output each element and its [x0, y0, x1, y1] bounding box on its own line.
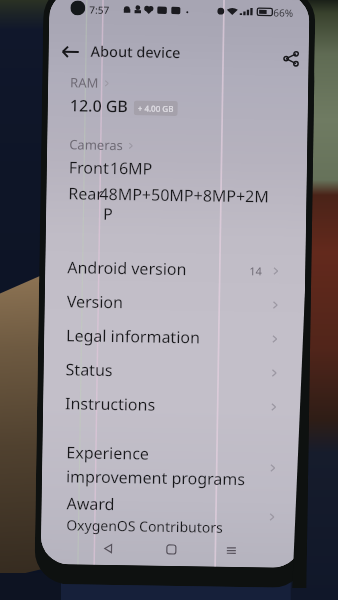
- button[interactable]: Share: [281, 49, 301, 68]
- staticText: + 4.00 GB: [138, 102, 174, 114]
- staticText: Status: [65, 358, 113, 381]
- staticText: Rear: [68, 182, 104, 205]
- button[interactable]: Experience: [42, 438, 303, 494]
- button[interactable]: Home: [164, 542, 178, 556]
- button[interactable]: Version: [44, 284, 305, 322]
- button[interactable]: Status: [43, 352, 304, 390]
- staticText: OxygenOS Contributors: [66, 515, 223, 537]
- staticText: Instructions: [65, 392, 156, 416]
- button[interactable]: Android version: [45, 250, 305, 288]
- staticText: RAM: [70, 73, 99, 92]
- staticText: About device: [90, 41, 181, 62]
- button[interactable]: Instructions: [43, 386, 303, 424]
- staticText: 7:57: [89, 3, 109, 17]
- button[interactable]: Back: [60, 41, 82, 62]
- staticText: Cameras: [69, 135, 123, 154]
- staticText: 14: [249, 263, 262, 278]
- button[interactable]: Back: [101, 541, 115, 555]
- staticText: Front: [69, 156, 109, 179]
- staticText: P: [103, 203, 113, 225]
- staticText: Legal information: [66, 324, 200, 348]
- button[interactable]: Legal information: [44, 318, 304, 356]
- staticText: 12.0 GB: [70, 94, 129, 117]
- staticText: Android version: [67, 256, 187, 280]
- staticText: 48MP+50MP+8MP+2M: [99, 183, 270, 207]
- staticText: improvement programs: [66, 465, 246, 490]
- staticText: Version: [67, 290, 124, 313]
- staticText: Award: [66, 492, 115, 515]
- staticText: Experience: [66, 441, 149, 465]
- button[interactable]: Award: [41, 490, 302, 540]
- staticText: 16MP: [110, 157, 153, 180]
- staticText: 66%: [273, 5, 293, 20]
- button[interactable]: Recent apps: [224, 543, 238, 557]
